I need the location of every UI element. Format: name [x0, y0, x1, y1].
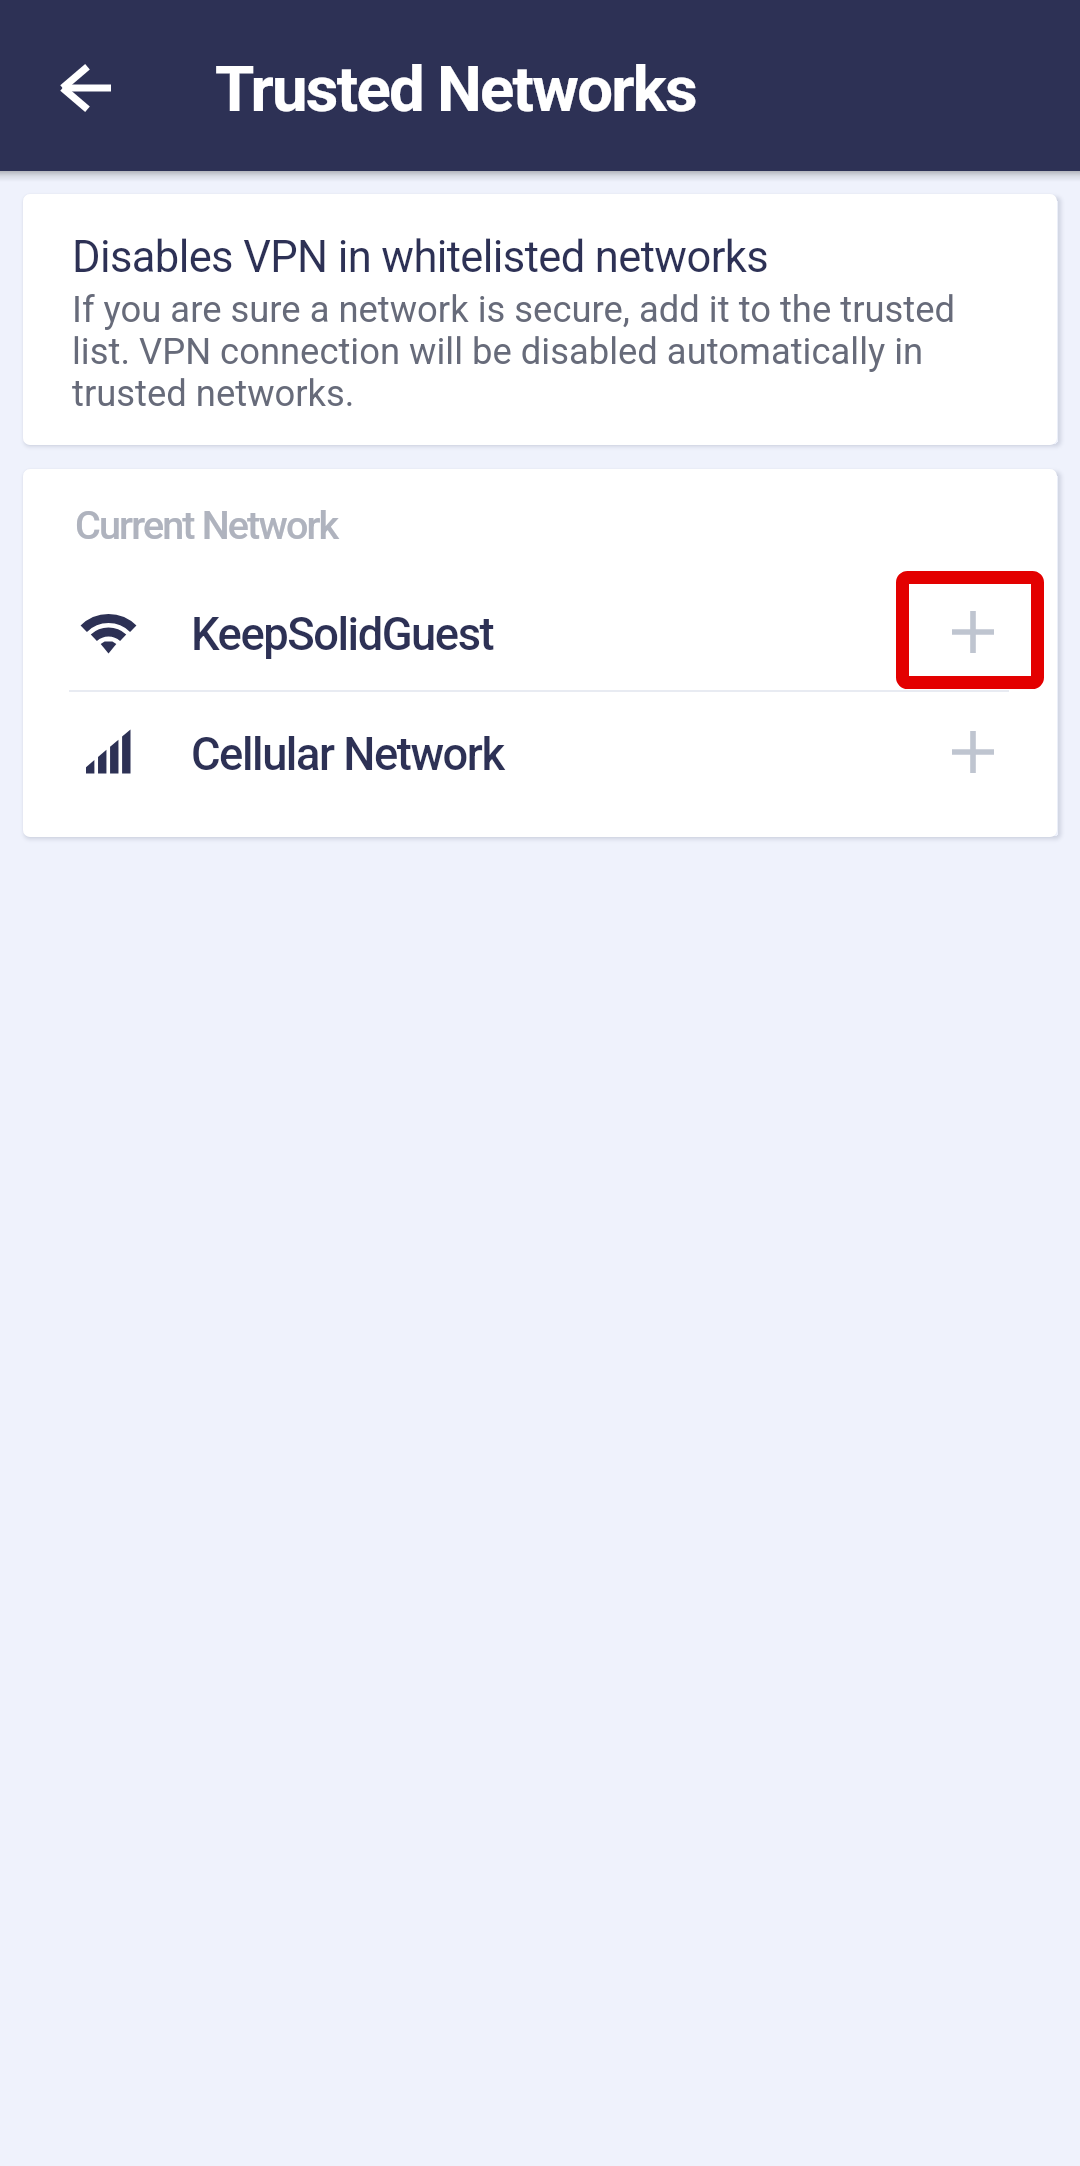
button[interactable]: Add KeepSolidGuest to trusted networks — [899, 572, 1047, 690]
staticText: Cellular Network — [191, 732, 504, 780]
staticText: If you are sure a network is secure, add… — [72, 289, 973, 415]
staticText: Current Network — [75, 507, 338, 547]
staticText: Disables VPN in whitelisted networks — [72, 232, 769, 282]
button[interactable]: Add Cellular Network to trusted networks — [899, 692, 1047, 810]
staticText: Trusted Networks — [215, 52, 696, 126]
button[interactable]: Navigate back — [46, 47, 124, 125]
staticText: KeepSolidGuest — [191, 612, 494, 660]
button[interactable]: KeepSolidGuest — [23, 572, 1057, 690]
button[interactable]: Cellular Network — [23, 692, 1057, 810]
